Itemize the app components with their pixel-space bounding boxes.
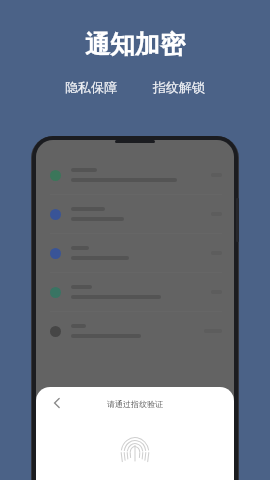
staticText: 通知加密 (85, 29, 185, 60)
button[interactable] (36, 312, 234, 350)
button[interactable]: Fingerprint authentication (116, 433, 154, 471)
staticText: 请通过指纹验证 (107, 399, 163, 409)
button[interactable]: Back (46, 392, 68, 414)
button[interactable] (36, 156, 234, 195)
button[interactable] (36, 195, 234, 234)
button[interactable] (36, 234, 234, 273)
staticText: 指纹解锁 (153, 79, 205, 95)
staticText: 隐私保障 (65, 79, 117, 95)
button[interactable] (36, 273, 234, 312)
